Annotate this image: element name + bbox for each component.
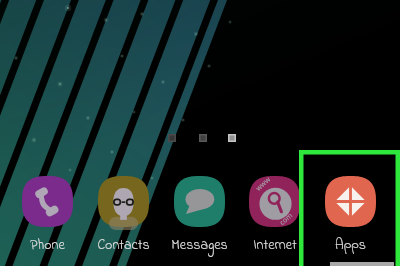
staticText: Phone bbox=[30, 235, 65, 255]
staticText: Apps bbox=[335, 235, 366, 255]
button[interactable]: Apps bbox=[311, 176, 390, 255]
staticText: com bbox=[278, 210, 295, 228]
button[interactable]: www bbox=[235, 176, 314, 255]
button[interactable]: Messages bbox=[160, 176, 239, 255]
staticText: Contacts bbox=[97, 235, 150, 255]
staticText: Internet bbox=[253, 235, 297, 255]
button[interactable]: Phone bbox=[8, 176, 87, 255]
staticText: www bbox=[254, 175, 273, 193]
button[interactable]: Contacts bbox=[84, 176, 163, 255]
staticText: Messages bbox=[171, 235, 228, 255]
